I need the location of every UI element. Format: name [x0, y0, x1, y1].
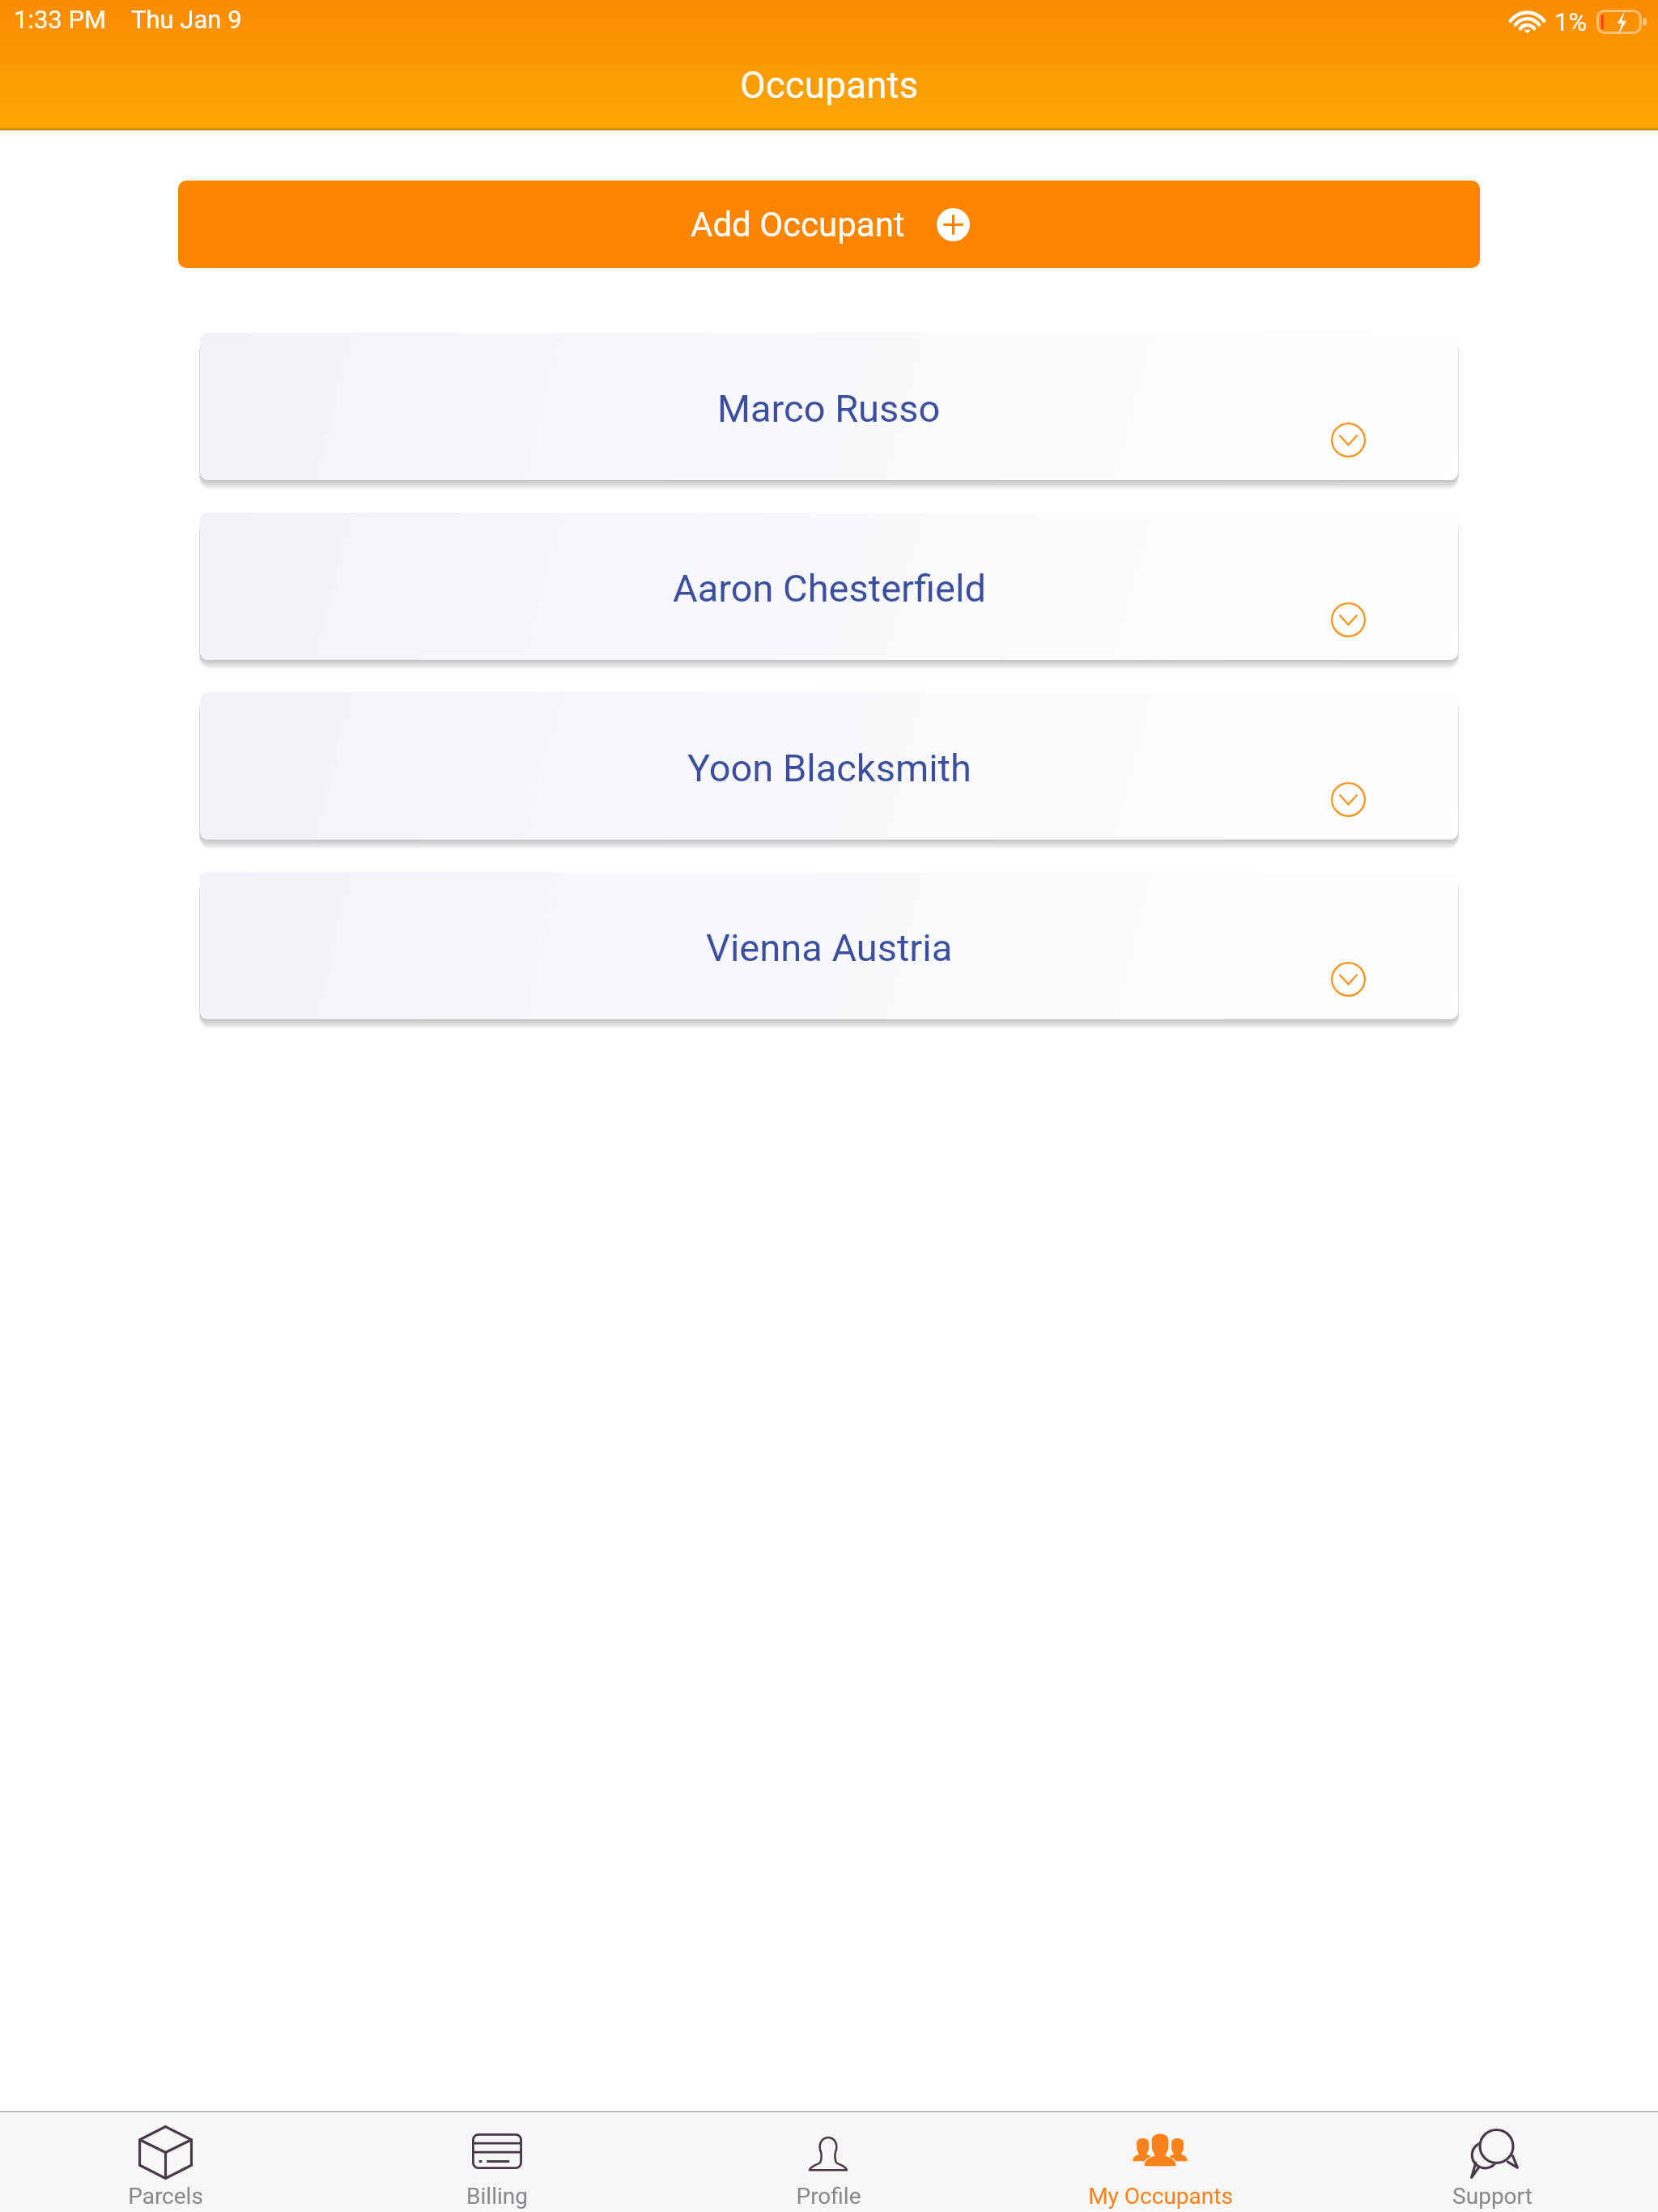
staticText: Parcels	[128, 2183, 203, 2210]
staticText: Profile	[796, 2183, 861, 2210]
staticText: Add Occupant	[691, 205, 905, 245]
button[interactable]: Billing	[331, 2112, 662, 2212]
staticText: Occupants	[740, 63, 919, 107]
button[interactable]: Support	[1326, 2112, 1658, 2212]
button[interactable]: Yoon Blacksmith	[200, 692, 1458, 840]
button[interactable]: My Occupants	[994, 2112, 1326, 2212]
button[interactable]: Expand details	[1331, 423, 1366, 457]
button[interactable]: Vienna Austria	[200, 872, 1458, 1019]
staticText: Marco Russo	[717, 386, 941, 431]
staticText: Thu Jan 9	[131, 5, 242, 34]
button[interactable]: Aaron Chesterfield	[200, 513, 1458, 660]
staticText: Billing	[466, 2183, 528, 2210]
staticText: 1:33 PM	[14, 5, 107, 34]
staticText: My Occupants	[1088, 2183, 1233, 2210]
button[interactable]: Expand details	[1331, 602, 1366, 637]
staticText: Yoon Blacksmith	[687, 746, 971, 790]
button[interactable]: Add Occupant	[178, 181, 1480, 268]
button[interactable]: Parcels	[0, 2112, 331, 2212]
staticText: Support	[1452, 2183, 1533, 2210]
staticText: Aaron Chesterfield	[673, 566, 986, 610]
button[interactable]: Expand details	[1331, 962, 1366, 997]
button[interactable]: Profile	[662, 2112, 994, 2212]
staticText: Vienna Austria	[706, 925, 953, 970]
button[interactable]: Marco Russo	[200, 333, 1458, 480]
staticText: 1%	[1554, 7, 1588, 36]
button[interactable]: Expand details	[1331, 782, 1366, 817]
